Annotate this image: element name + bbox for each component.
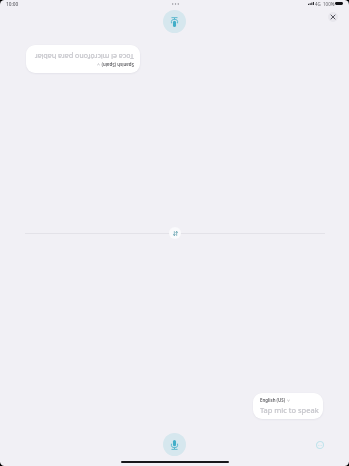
staticText: Tap mic to speak xyxy=(260,405,319,415)
button[interactable]: Speak Spanish xyxy=(163,10,186,33)
staticText: Spanish (Spain) xyxy=(101,62,134,68)
staticText: English (US) xyxy=(260,397,286,403)
button[interactable]: Conversation mode xyxy=(314,439,326,451)
button[interactable]: Swap languages xyxy=(169,227,181,239)
staticText: 4G xyxy=(315,1,321,7)
staticText: Toca el micrófono para hablar xyxy=(34,52,134,62)
staticText: 10:00 xyxy=(6,1,19,8)
button[interactable]: Close xyxy=(328,12,338,22)
button[interactable]: Spanish (Spain) xyxy=(26,45,140,73)
button[interactable]: Speak English xyxy=(163,433,186,456)
staticText: 100% xyxy=(323,1,335,7)
button[interactable]: More options xyxy=(167,0,183,8)
button[interactable]: English (US) xyxy=(253,393,323,419)
